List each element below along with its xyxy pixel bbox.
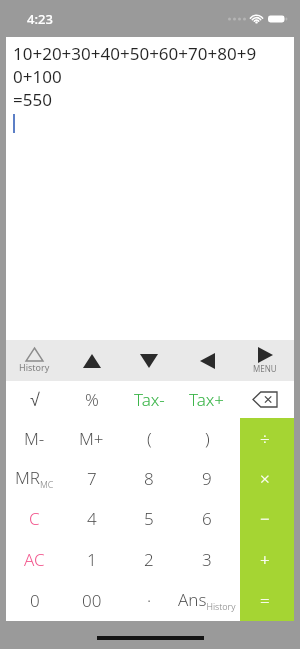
staticText: AC — [24, 548, 45, 571]
button[interactable]: 5 — [120, 498, 178, 539]
button[interactable]: 6 — [178, 498, 236, 539]
staticText: 1 — [87, 548, 97, 571]
button[interactable]: Down — [120, 340, 178, 381]
staticText: C — [29, 507, 40, 530]
button[interactable]: AnsHistory — [178, 580, 236, 621]
button[interactable]: 9 — [178, 458, 236, 498]
staticText: 2 — [144, 548, 154, 571]
button[interactable]: 0 — [6, 580, 63, 621]
button[interactable]: = — [236, 580, 294, 621]
staticText: 0 — [30, 589, 40, 612]
button[interactable]: C — [6, 498, 63, 539]
button[interactable]: ÷ — [236, 418, 294, 458]
staticText: √ — [30, 390, 40, 410]
staticText: 6 — [202, 507, 212, 530]
button[interactable]: Tax- — [120, 381, 178, 418]
button[interactable]: 7 — [63, 458, 120, 498]
staticText: 0+100 — [13, 65, 62, 88]
button[interactable]: · — [120, 580, 178, 621]
staticText: 10+20+30+40+50+60+70+80+9 — [13, 42, 257, 65]
button[interactable]: MRMC — [6, 458, 63, 498]
button[interactable]: 2 — [120, 539, 178, 580]
staticText: % — [85, 388, 99, 411]
staticText: 5 — [144, 507, 154, 530]
staticText: M- — [24, 427, 45, 450]
staticText: Tax- — [134, 388, 165, 411]
staticText: 9 — [202, 467, 212, 490]
button[interactable]: 8 — [120, 458, 178, 498]
button[interactable]: Backspace — [236, 381, 294, 418]
staticText: M+ — [79, 427, 104, 450]
button[interactable]: AC — [6, 539, 63, 580]
staticText: AnsHistory — [178, 588, 236, 613]
staticText: 4:23 — [27, 10, 53, 28]
button[interactable]: 3 — [178, 539, 236, 580]
button[interactable]: % — [63, 381, 120, 418]
staticText: =550 — [13, 88, 52, 111]
button[interactable]: Tax+ — [178, 381, 236, 418]
button[interactable]: √ — [6, 381, 63, 418]
staticText: MENU — [253, 363, 277, 374]
button[interactable]: 00 — [63, 580, 120, 621]
staticText: 4 — [87, 507, 97, 530]
staticText: ( — [147, 427, 152, 450]
button[interactable]: × — [236, 458, 294, 498]
staticText: MRMC — [15, 466, 54, 491]
staticText: 8 — [144, 467, 154, 490]
staticText: × — [260, 467, 270, 490]
staticText: History — [19, 361, 50, 373]
button[interactable]: M- — [6, 418, 63, 458]
button[interactable]: Left — [178, 340, 236, 381]
staticText: = — [260, 589, 270, 612]
button[interactable]: 1 — [63, 539, 120, 580]
button[interactable]: Menu — [236, 340, 294, 381]
button[interactable]: History — [6, 340, 63, 381]
staticText: ÷ — [260, 427, 270, 450]
button[interactable]: M+ — [63, 418, 120, 458]
button[interactable]: + — [236, 539, 294, 580]
staticText: 7 — [87, 467, 97, 490]
button[interactable]: ( — [120, 418, 178, 458]
staticText: Tax+ — [189, 388, 225, 411]
staticText: 00 — [82, 589, 102, 612]
button[interactable]: − — [236, 498, 294, 539]
staticText: + — [260, 548, 270, 571]
button[interactable]: ) — [178, 418, 236, 458]
staticText: − — [260, 507, 270, 530]
button[interactable]: 4 — [63, 498, 120, 539]
staticText: 3 — [202, 548, 212, 571]
button[interactable]: Up — [63, 340, 120, 381]
staticText: · — [147, 589, 152, 612]
staticText: ) — [205, 427, 210, 450]
